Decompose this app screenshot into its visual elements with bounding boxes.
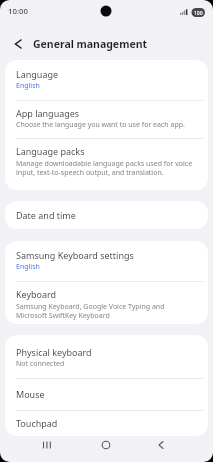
staticText: Manage downloadable language packs used …: [16, 159, 193, 169]
staticText: 100: [194, 10, 203, 17]
button[interactable]: [146, 433, 176, 457]
staticText: Samsung Keyboard, Google Voice Typing an…: [16, 302, 165, 312]
staticText: Date and time: [16, 209, 76, 221]
staticText: General management: [33, 37, 148, 51]
button[interactable]: Touchpad: [5, 411, 208, 436]
button[interactable]: Language packs: [5, 139, 208, 190]
button[interactable]: Physical keyboard: [5, 335, 208, 378]
button[interactable]: Language: [5, 60, 208, 100]
button[interactable]: Mouse: [5, 379, 208, 411]
staticText: Language: [16, 68, 59, 80]
button[interactable]: [91, 433, 121, 457]
staticText: Touchpad: [16, 417, 58, 429]
button[interactable]: Keyboard: [5, 282, 208, 324]
button[interactable]: [8, 34, 28, 54]
staticText: App languages: [16, 107, 80, 119]
staticText: English: [16, 262, 40, 272]
button[interactable]: Samsung Keyboard settings: [5, 241, 208, 281]
button[interactable]: App languages: [5, 101, 208, 138]
staticText: Language packs: [16, 145, 85, 157]
button[interactable]: [32, 433, 62, 457]
staticText: 10:00: [8, 6, 28, 17]
staticText: Keyboard: [16, 288, 57, 300]
staticText: Microsoft SwiftKey Keyboard: [16, 311, 110, 321]
staticText: Samsung Keyboard settings: [16, 249, 134, 261]
staticText: input, text-to-speech output, and transl…: [16, 168, 164, 178]
staticText: Choose the language you want to use for …: [16, 120, 185, 130]
staticText: Mouse: [16, 388, 45, 400]
staticText: Physical keyboard: [16, 346, 92, 358]
button[interactable]: Date and time: [5, 201, 208, 229]
staticText: English: [16, 81, 40, 91]
staticText: Not connected: [16, 359, 65, 369]
